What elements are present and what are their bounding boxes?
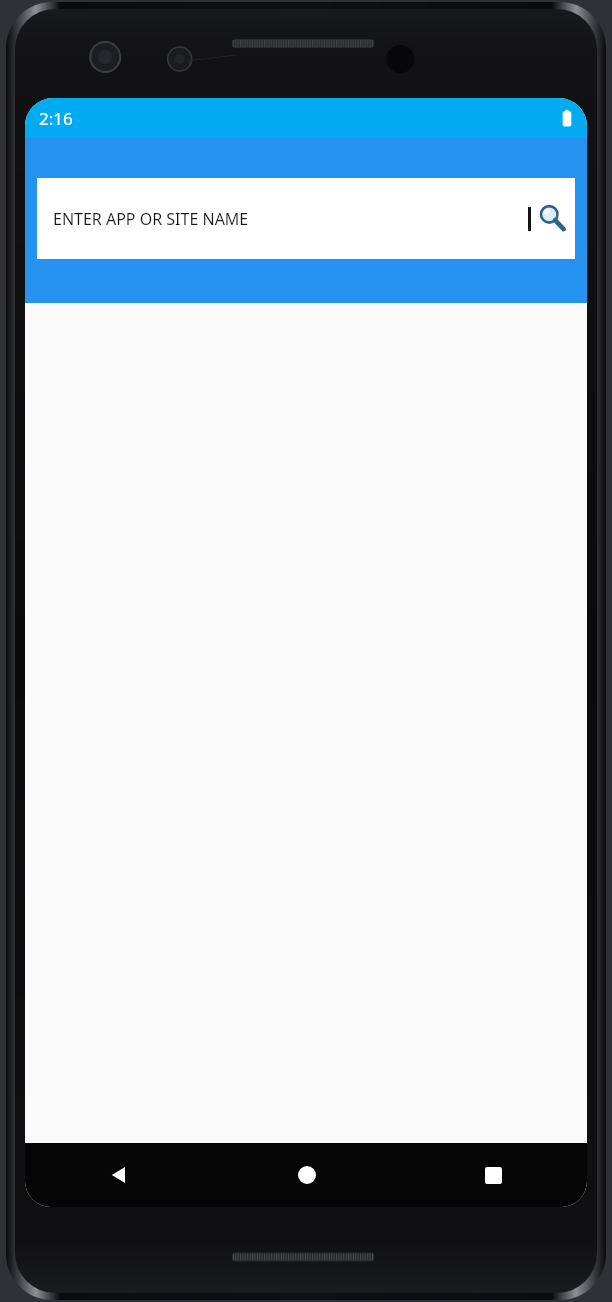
staticText: 2:16 <box>39 107 73 130</box>
button[interactable]: Back <box>25 1143 213 1207</box>
staticText: ENTER APP OR SITE NAME <box>53 208 528 230</box>
button[interactable]: Recent apps <box>400 1143 587 1207</box>
button[interactable]: Search <box>531 178 575 259</box>
button[interactable]: ENTER APP OR SITE NAME <box>37 178 575 259</box>
button[interactable]: Home <box>213 1143 400 1207</box>
